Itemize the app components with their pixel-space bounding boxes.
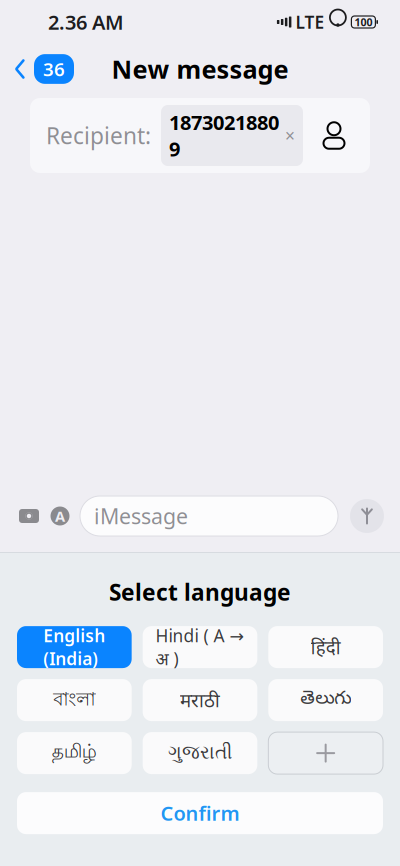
button[interactable]: বাংলা	[17, 679, 132, 721]
button[interactable]: English (India)	[17, 626, 132, 668]
button[interactable]: ગુજરાતી	[143, 732, 257, 774]
staticText: தமிழ்	[52, 742, 97, 764]
staticText: Select language	[109, 577, 291, 607]
staticText: LTE	[295, 10, 324, 33]
staticText: 18730218809	[169, 109, 279, 162]
staticText: ×	[285, 124, 295, 147]
button[interactable]: 18730218809	[161, 105, 303, 166]
staticText: मराठी	[180, 688, 220, 712]
staticText: 2.36 AM	[48, 9, 124, 35]
button[interactable]: Apps	[50, 506, 70, 526]
staticText: Recipient:	[46, 120, 151, 150]
button[interactable]: தமிழ்	[17, 732, 132, 774]
button[interactable]: Send	[348, 497, 386, 535]
staticText: Hindi ( A → अ )	[155, 624, 244, 670]
button[interactable]: తెలుగు	[268, 679, 383, 721]
button[interactable]: Hindi ( A → अ )	[143, 626, 257, 668]
staticText: 36	[43, 57, 65, 81]
button[interactable]: iMessage	[80, 496, 338, 536]
button[interactable]: Back, 36 unread	[0, 46, 88, 92]
button[interactable]: Add contact	[314, 115, 354, 155]
button[interactable]: मराठी	[143, 679, 257, 721]
button[interactable]: Confirm	[17, 792, 383, 834]
button[interactable]: Camera	[18, 505, 40, 527]
staticText: বাংলা	[53, 687, 95, 713]
staticText: English (India)	[43, 624, 105, 670]
staticText: New message	[111, 52, 288, 86]
staticText: iMessage	[94, 502, 188, 530]
staticText: ગુજરાતી	[168, 744, 232, 762]
staticText: 100	[354, 15, 372, 29]
button[interactable]: हिंदी	[268, 626, 383, 668]
staticText: A	[55, 506, 65, 526]
button[interactable]: Add language	[268, 732, 383, 774]
staticText: Confirm	[160, 800, 239, 826]
staticText: తెలుగు	[300, 688, 351, 712]
staticText: हिंदी	[311, 635, 341, 659]
